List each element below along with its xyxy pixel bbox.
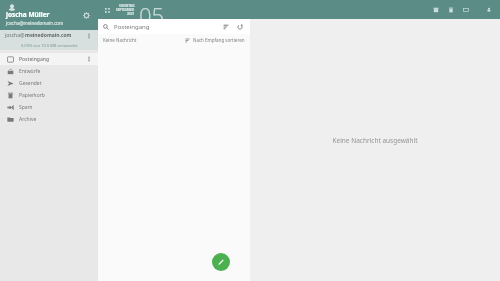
staticText: Archive [19,116,37,123]
button[interactable]: Gesendet [0,77,98,89]
button[interactable]: joscha Müller [0,0,98,30]
staticText: Entwürfe [19,68,41,75]
button[interactable]: Posteingang [0,53,98,65]
staticText: Keine Nachricht [103,37,137,43]
staticText: 2021 [127,12,135,16]
button[interactable]: joscha@ [0,30,98,50]
staticText: Nach Empfang sortieren [193,37,245,43]
staticText: Papierkorb [19,92,45,99]
button[interactable]: Konto [483,4,494,15]
button[interactable]: Aktualisieren [234,21,245,32]
button[interactable]: Nach Empfang sortieren [185,37,245,43]
button[interactable]: Archivieren [430,4,441,15]
button[interactable]: Filter [220,21,231,32]
button[interactable]: Einstellungen [80,9,92,21]
staticText: 0.09% von 10.5 MB verwendet [21,43,78,48]
button[interactable]: Mehr Optionen [85,32,93,40]
staticText: Posteingang [19,56,50,63]
staticText: 05 [139,0,165,19]
staticText: Spam [19,104,33,111]
button[interactable]: Mehr Optionen [85,55,93,63]
button[interactable]: Als gelesen markieren [460,4,471,15]
staticText: Gesendet [19,80,42,87]
staticText: Keine Nachricht ausgewählt [332,136,418,145]
staticText: SEPTEMBER [116,8,135,12]
staticText: meinedomain.com [25,32,72,39]
button[interactable]: Papierkorb [0,89,98,101]
button[interactable]: Entwürfe [0,65,98,77]
staticText: Posteingang [114,23,150,31]
staticText: joscha@meinedomain.com [6,20,64,26]
button[interactable]: Löschen [445,4,456,15]
staticText: joscha@ [5,32,25,39]
staticText: SONNTAG [119,4,135,8]
button[interactable]: Verfassen [212,253,230,271]
button[interactable]: Menü [102,5,112,15]
button[interactable]: Archive [0,113,98,125]
button[interactable]: Spam [0,101,98,113]
staticText: joscha Müller [6,10,50,19]
